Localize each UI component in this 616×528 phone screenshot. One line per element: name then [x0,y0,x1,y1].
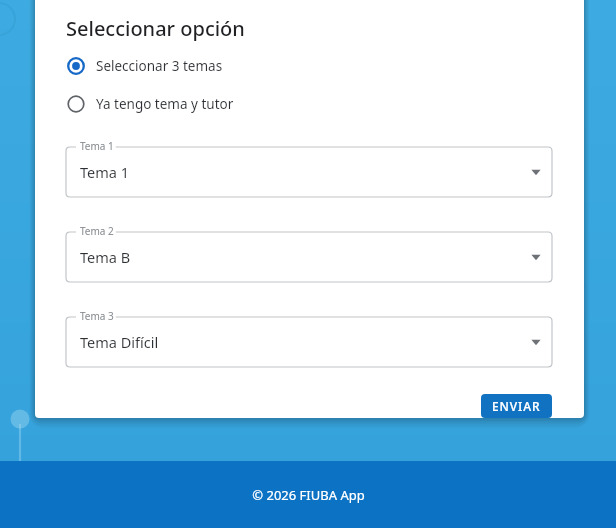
staticText: Tema 1 [80,162,129,182]
staticText: Seleccionar 3 temas [96,57,223,75]
staticText: Tema B [80,247,131,267]
staticText: © 2026 FIUBA App [252,486,365,504]
staticText: Tema 2 [80,224,114,238]
staticText: Tema 3 [80,309,114,323]
staticText: Tema Difícil [80,332,159,352]
staticText: Seleccionar opción [66,15,245,42]
staticText: ENVIAR [492,398,541,414]
staticText: Ya tengo tema y tutor [96,95,234,113]
button[interactable]: Tema 3: Tema Difícil, abrir menú [66,308,552,367]
button[interactable]: ENVIAR [481,394,552,418]
button[interactable]: Seleccionar 3 temas [35,54,584,78]
button[interactable]: Tema 1: Tema 1, abrir menú [66,138,552,197]
button[interactable]: Tema 2: Tema B, abrir menú [66,223,552,282]
staticText: Tema 1 [80,139,114,153]
button[interactable]: Ya tengo tema y tutor [35,92,584,116]
